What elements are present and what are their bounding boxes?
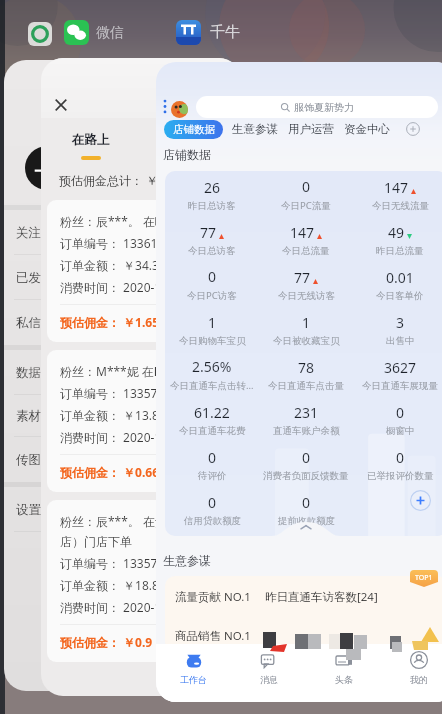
button[interactable]: 素材 xyxy=(4,395,194,437)
staticText: 粉丝：辰***。 在呦 xyxy=(60,213,167,229)
staticText: 77 xyxy=(294,268,311,287)
staticText: 数据 xyxy=(16,365,41,381)
staticText: 私信 xyxy=(16,315,41,331)
staticText: 预估佣金： ￥0.9 xyxy=(60,634,153,650)
staticText: 预估佣金： ￥1.65 xyxy=(60,314,160,330)
button[interactable]: 0 xyxy=(259,172,353,217)
staticText: 头条 xyxy=(335,674,353,685)
staticText: 工作台 xyxy=(180,674,207,685)
staticText: 橱窗中 xyxy=(386,425,415,437)
staticText: 资金中心 xyxy=(344,122,390,136)
button[interactable]: 私信 xyxy=(4,300,194,345)
button[interactable]: 服饰夏新势力 xyxy=(196,96,438,118)
button[interactable]: Add tab xyxy=(406,122,420,136)
button[interactable]: 0.01 xyxy=(353,262,442,307)
staticText: 订单金额： ￥18.8 xyxy=(60,577,159,593)
button[interactable]: 关注 xyxy=(4,210,194,255)
button[interactable]: WeChat xyxy=(64,20,89,45)
button[interactable]: 生意参谋 xyxy=(227,119,283,139)
button[interactable]: 0 xyxy=(165,262,259,307)
staticText: 49 xyxy=(388,223,405,242)
button[interactable]: 0 xyxy=(259,487,353,532)
staticText: 店）门店下单 xyxy=(60,534,132,549)
staticText: 订单编号： 133614 xyxy=(60,235,165,251)
button[interactable]: 77 xyxy=(165,217,259,262)
staticText: 2.56% xyxy=(192,357,232,376)
button[interactable]: 0 xyxy=(353,442,442,487)
button[interactable]: Profile xyxy=(171,101,188,118)
button[interactable]: Add widget xyxy=(410,490,431,511)
staticText: 预估佣金总计： ￥3 xyxy=(59,172,165,188)
button[interactable]: 粉丝：辰***。 在贵 xyxy=(47,500,241,662)
staticText: 3 xyxy=(396,313,405,332)
button[interactable]: Close xyxy=(54,98,68,112)
staticText: TOP1 xyxy=(415,573,433,583)
staticText: 0 xyxy=(302,493,311,512)
staticText: 生意参谋 xyxy=(163,553,211,568)
button[interactable]: 78 xyxy=(259,352,353,397)
staticText: 我的 xyxy=(410,674,428,685)
button[interactable]: Qianniu xyxy=(176,20,201,45)
staticText: 昨日直通车访客数[24] xyxy=(265,589,378,605)
button[interactable]: 0 xyxy=(353,397,442,442)
button[interactable]: 147 xyxy=(353,172,442,217)
staticText: 今日直通车点击量 xyxy=(268,380,344,392)
staticText: 77 xyxy=(200,223,217,242)
button[interactable]: 0 xyxy=(165,487,259,532)
staticText: 订单金额： ￥13.8 xyxy=(60,407,159,423)
button[interactable]: 0 xyxy=(259,442,353,487)
button[interactable]: 设置 xyxy=(4,487,194,532)
staticText: 传图 xyxy=(16,452,41,468)
button[interactable]: 粉丝：M***妮 在Piz xyxy=(47,350,241,492)
button[interactable]: 资金中心 xyxy=(339,119,395,139)
staticText: 店铺数据 xyxy=(173,123,215,136)
button[interactable]: 231 xyxy=(259,397,353,442)
staticText: 消费者负面反馈数量 xyxy=(263,470,349,482)
button[interactable] xyxy=(353,487,442,532)
staticText: 设置 xyxy=(16,502,41,518)
button[interactable]: 77 xyxy=(259,262,353,307)
staticText: 待评价 xyxy=(198,470,227,482)
staticText: 今日总访客 xyxy=(188,245,236,257)
staticText: 昨日总访客 xyxy=(188,200,236,212)
staticText: 今日无线流量 xyxy=(372,200,429,212)
button[interactable]: 已发 xyxy=(4,255,194,300)
button[interactable]: 工作台 xyxy=(156,644,231,702)
button[interactable]: 1 xyxy=(259,307,353,352)
staticText: 今日总流量 xyxy=(282,245,330,257)
button[interactable]: 我的 xyxy=(381,644,442,702)
staticText: 千牛 xyxy=(210,23,240,42)
staticText: 0 xyxy=(302,177,311,196)
button[interactable]: 粉丝：辰***。 在呦 xyxy=(47,200,241,342)
button[interactable]: 2.56% xyxy=(165,352,259,397)
button[interactable]: 消息 xyxy=(231,644,306,702)
staticText: 昨日总流量 xyxy=(376,245,424,257)
button[interactable]: More options xyxy=(163,99,167,114)
button[interactable]: 0 xyxy=(165,442,259,487)
staticText: 在路上 xyxy=(41,132,140,148)
button[interactable]: 传图 xyxy=(4,437,194,482)
button[interactable]: 26 xyxy=(165,172,259,217)
button[interactable]: 数据 xyxy=(4,350,194,395)
staticText: 3627 xyxy=(384,358,417,377)
button[interactable]: 1 xyxy=(165,307,259,352)
button[interactable]: 3627 xyxy=(353,352,442,397)
button[interactable]: 店铺数据 xyxy=(164,120,223,139)
button[interactable]: App one xyxy=(28,22,52,46)
button[interactable]: 头条 xyxy=(306,644,381,702)
button[interactable]: 61.22 xyxy=(165,397,259,442)
staticText: 0 xyxy=(396,448,405,467)
button[interactable]: 3 xyxy=(353,307,442,352)
staticText: 已举报评价数量 xyxy=(367,470,434,482)
staticText: 0 xyxy=(302,448,311,467)
staticText: 今日被收藏宝贝 xyxy=(273,335,340,347)
button[interactable]: 流量贡献 NO.1 xyxy=(165,576,442,652)
staticText: 出售中 xyxy=(386,335,415,347)
button[interactable]: 49 xyxy=(353,217,442,262)
staticText: 61.22 xyxy=(194,403,230,422)
staticText: 流量贡献 NO.1 xyxy=(175,589,251,605)
button[interactable]: Profile xyxy=(25,146,69,190)
button[interactable]: 用户运营 xyxy=(283,119,339,139)
button[interactable]: 147 xyxy=(259,217,353,262)
staticText: 订单编号： 133579 xyxy=(60,385,165,401)
